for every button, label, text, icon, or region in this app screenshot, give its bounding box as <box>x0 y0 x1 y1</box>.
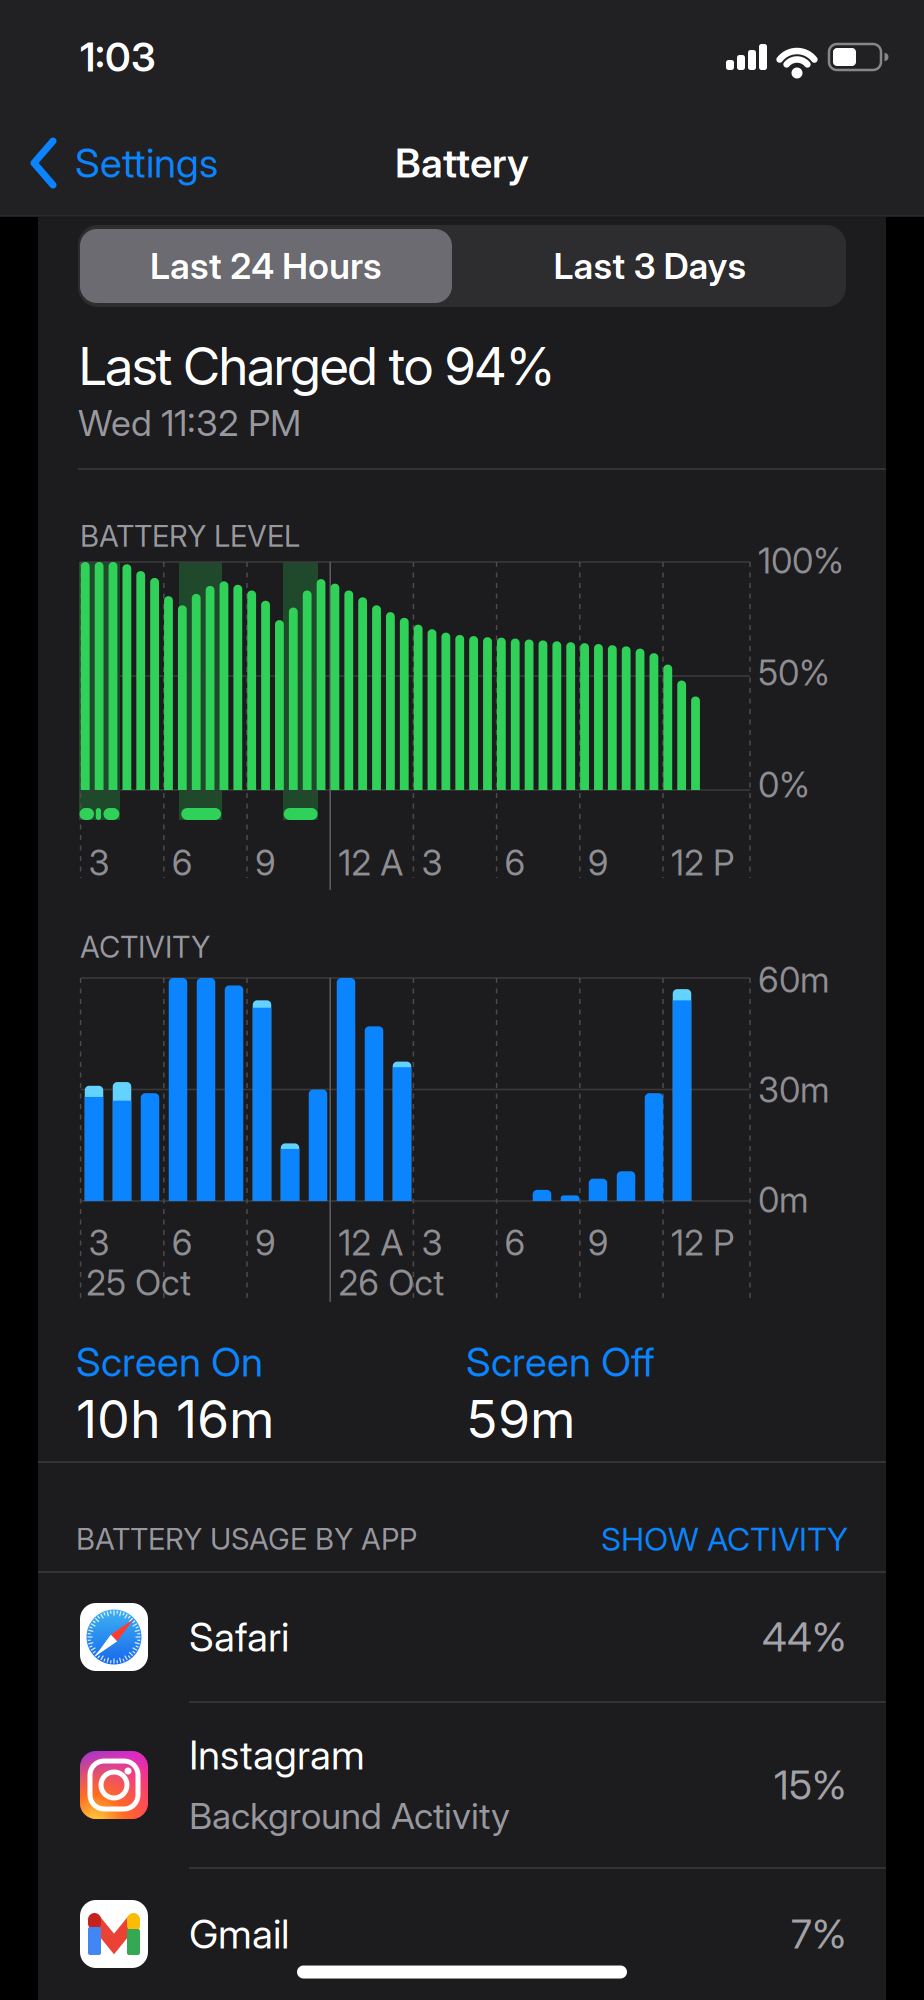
staticText: 100% <box>758 541 844 581</box>
button[interactable]: Back to Settings <box>30 131 218 195</box>
staticText: Screen Off <box>466 1338 655 1386</box>
button[interactable]: Last 3 Days <box>458 225 842 307</box>
staticText: 50% <box>758 653 830 693</box>
staticText: 30m <box>758 1070 830 1110</box>
staticText: 9 <box>255 843 276 883</box>
staticText: Safari <box>189 1613 289 1661</box>
staticText: 0% <box>758 765 810 805</box>
staticText: 0m <box>758 1180 809 1220</box>
staticText: SHOW ACTIVITY <box>601 1520 848 1558</box>
staticText: 15% <box>774 1761 846 1809</box>
staticText: 60m <box>758 960 830 1000</box>
staticText: 10h 16m <box>76 1388 275 1450</box>
staticText: 6 <box>505 1223 526 1263</box>
button[interactable]: Safari <box>38 1572 886 1702</box>
staticText: 6 <box>505 843 526 883</box>
staticText: 7% <box>791 1910 846 1958</box>
staticText: Battery <box>395 139 529 187</box>
button[interactable]: Gmail <box>38 1868 886 2000</box>
staticText: 9 <box>255 1223 276 1263</box>
staticText: 3 <box>421 1223 442 1263</box>
staticText: 6 <box>172 1223 193 1263</box>
staticText: 26 Oct <box>338 1263 444 1303</box>
staticText: 9 <box>588 1223 609 1263</box>
staticText: Last Charged to 94% <box>78 335 556 397</box>
staticText: 12 A <box>338 843 403 883</box>
staticText: 59m <box>466 1388 576 1450</box>
staticText: Instagram <box>189 1731 365 1779</box>
button[interactable]: Instagram <box>38 1702 886 1868</box>
staticText: Wed 11:32 PM <box>78 402 301 444</box>
button[interactable]: Last 24 Hours <box>74 225 458 307</box>
button[interactable]: SHOW ACTIVITY <box>418 1509 848 1569</box>
staticText: 25 Oct <box>86 1263 191 1303</box>
staticText: BATTERY USAGE BY APP <box>76 1522 417 1556</box>
staticText: Background Activity <box>189 1795 510 1837</box>
staticText: Last 3 Days <box>553 245 746 287</box>
staticText: 3 <box>421 843 442 883</box>
staticText: 12 A <box>338 1223 403 1263</box>
staticText: 12 P <box>671 1223 735 1263</box>
staticText: Screen On <box>76 1338 263 1386</box>
staticText: 9 <box>588 843 609 883</box>
staticText: Gmail <box>189 1910 289 1958</box>
staticText: BATTERY LEVEL <box>80 519 300 553</box>
staticText: ACTIVITY <box>80 930 210 964</box>
staticText: 44% <box>762 1613 846 1661</box>
staticText: 3 <box>89 1223 110 1263</box>
staticText: 3 <box>89 843 110 883</box>
staticText: 6 <box>172 843 193 883</box>
staticText: 12 P <box>671 843 735 883</box>
staticText: Last 24 Hours <box>150 245 382 287</box>
staticText: Settings <box>75 139 218 187</box>
staticText: 1:03 <box>80 33 156 81</box>
